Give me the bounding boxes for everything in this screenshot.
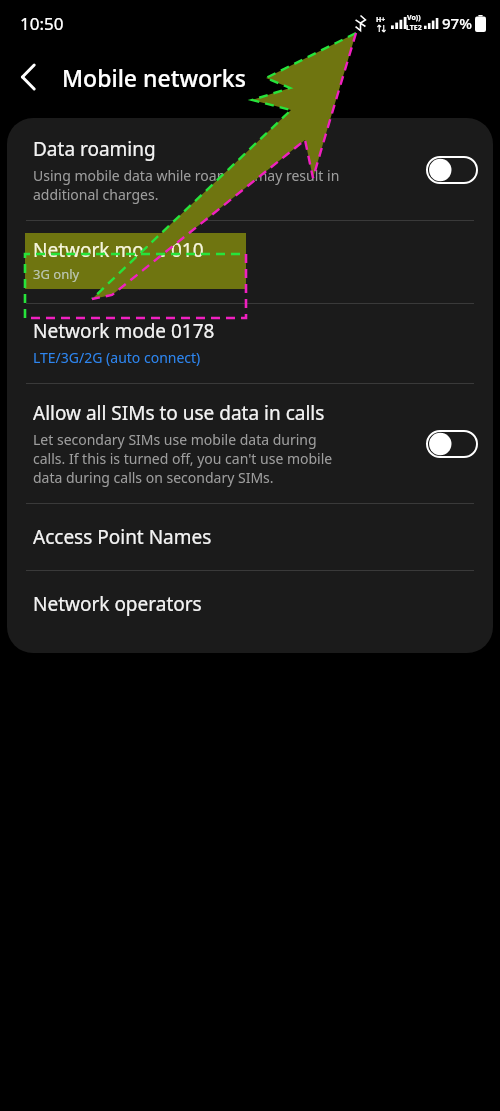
staticText: 97% [442, 13, 472, 33]
button[interactable]: Network operators [7, 571, 493, 637]
button[interactable]: Toggle [427, 430, 477, 458]
staticText: H+ [376, 15, 386, 25]
button[interactable]: Toggle [427, 156, 477, 184]
staticText: 10:50 [20, 12, 64, 35]
staticText: Let secondary SIMs use mobile data durin… [33, 430, 333, 487]
staticText: Mobile networks [62, 62, 246, 93]
staticText: Allow all SIMs to use data in calls [33, 400, 325, 426]
staticText: Access Point Names [33, 524, 212, 550]
staticText: Network mode 0178 [33, 318, 215, 344]
button[interactable]: Data roaming [7, 118, 493, 220]
staticText: Vo)) [407, 13, 421, 23]
button[interactable]: Access Point Names [7, 504, 493, 570]
staticText: Using mobile data while roaming may resu… [33, 166, 340, 204]
button[interactable]: Allow all SIMs to use data in calls [7, 384, 493, 503]
staticText: Network mode 010 [33, 237, 204, 263]
button[interactable]: Back [0, 49, 56, 105]
staticText: LTE/3G/2G (auto connect) [33, 348, 201, 367]
staticText: Data roaming [33, 136, 156, 162]
staticText: 3G only [33, 265, 80, 283]
button[interactable]: Network mode 010 [7, 221, 493, 303]
staticText: Network operators [33, 591, 202, 617]
staticText: LTE2 [406, 23, 422, 33]
button[interactable]: Network mode 0178 [7, 304, 493, 383]
